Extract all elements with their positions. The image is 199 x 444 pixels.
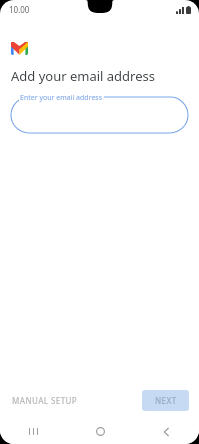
button[interactable]: Back [133,419,199,444]
button[interactable]: Enter your email address [11,97,188,133]
button[interactable]: Recent apps [0,419,67,444]
staticText: NEXT [155,395,177,406]
button[interactable]: Home [67,419,133,444]
button[interactable]: MANUAL SETUP [10,391,80,410]
button[interactable]: NEXT [142,390,189,411]
staticText: Add your email address [11,67,156,85]
staticText: MANUAL SETUP [12,395,78,406]
staticText: Enter your email address [20,93,103,103]
staticText: 10.00 [9,4,30,15]
